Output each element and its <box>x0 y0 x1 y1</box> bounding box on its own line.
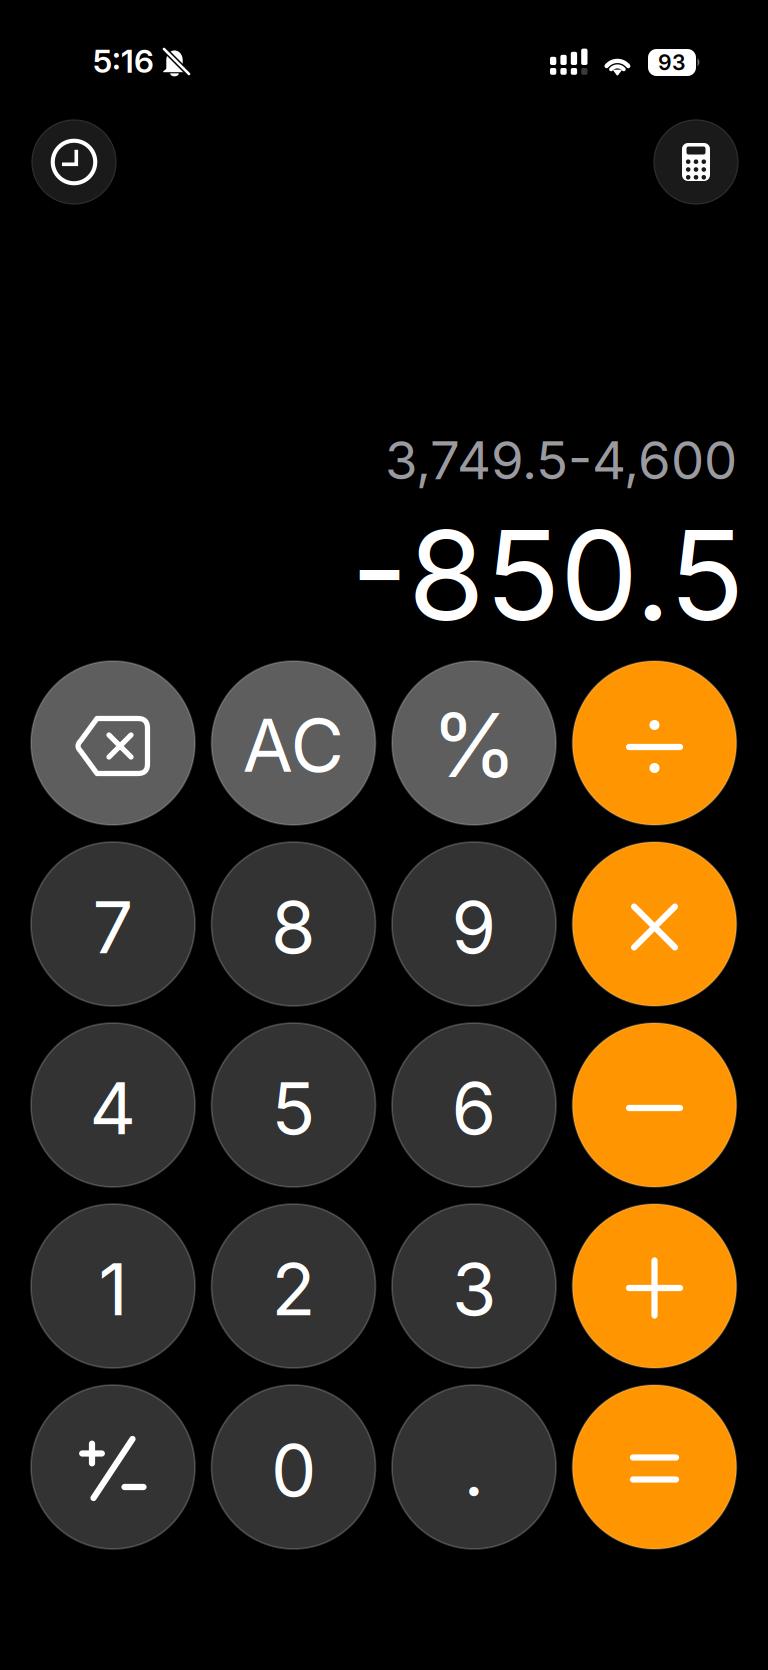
button[interactable]: Calculator mode <box>654 120 738 204</box>
button[interactable]: 0 <box>211 1385 375 1549</box>
button[interactable]: 1 <box>31 1204 195 1368</box>
button[interactable]: Divide <box>572 661 736 825</box>
staticText: 4 <box>89 1064 136 1151</box>
staticText: 5 <box>271 1064 315 1151</box>
button[interactable]: 5 <box>211 1023 375 1187</box>
button[interactable]: % <box>392 661 556 825</box>
staticText: 5:16 <box>93 42 154 80</box>
button[interactable]: 6 <box>392 1023 556 1187</box>
button[interactable]: History <box>32 120 116 204</box>
staticText: . <box>463 1426 484 1513</box>
button[interactable]: Subtract <box>572 1023 736 1187</box>
staticText: 6 <box>451 1064 496 1151</box>
staticText: % <box>431 692 517 798</box>
staticText: 2 <box>271 1245 315 1332</box>
staticText: -850.5 <box>351 500 744 650</box>
button[interactable]: Delete <box>31 661 195 825</box>
staticText: 0 <box>271 1426 316 1513</box>
button[interactable]: Multiply <box>572 842 736 1006</box>
staticText: 7 <box>92 883 133 970</box>
button[interactable]: 8 <box>211 842 375 1006</box>
button[interactable]: 3 <box>392 1204 556 1368</box>
staticText: 3,749.5-4,600 <box>385 428 737 492</box>
staticText: 93 <box>658 50 686 75</box>
button[interactable]: 9 <box>392 842 556 1006</box>
staticText: 1 <box>98 1245 127 1332</box>
staticText: 8 <box>271 883 316 970</box>
button[interactable]: 4 <box>31 1023 195 1187</box>
button[interactable]: Add <box>572 1204 736 1368</box>
staticText: 9 <box>451 883 496 970</box>
button[interactable]: Plus minus <box>31 1385 195 1549</box>
button[interactable]: AC <box>211 661 375 825</box>
staticText: AC <box>242 701 344 789</box>
button[interactable]: 7 <box>31 842 195 1006</box>
button[interactable]: Equals <box>572 1385 736 1549</box>
staticText: 3 <box>452 1245 496 1332</box>
button[interactable]: 2 <box>211 1204 375 1368</box>
button[interactable]: . <box>392 1385 556 1549</box>
